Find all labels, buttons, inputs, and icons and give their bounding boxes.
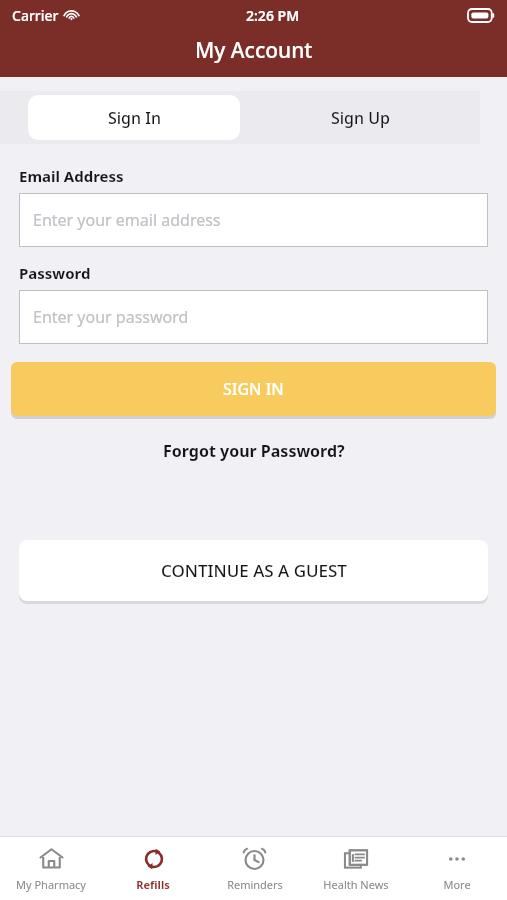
staticText: Forgot your Password?: [163, 440, 345, 462]
staticText: Email Address: [19, 166, 124, 186]
staticText: 2:26 PM: [246, 6, 300, 25]
staticText: My Pharmacy: [16, 877, 86, 892]
button[interactable]: Sign In: [28, 95, 240, 140]
staticText: Password: [19, 263, 91, 283]
button[interactable]: Health News: [305, 837, 406, 900]
staticText: More: [443, 877, 471, 892]
button[interactable]: CONTINUE AS A GUEST: [19, 540, 488, 601]
staticText: Health News: [323, 877, 389, 892]
staticText: Refills: [136, 877, 170, 892]
staticText: Sign In: [108, 107, 161, 129]
staticText: CONTINUE AS A GUEST: [161, 559, 347, 582]
button[interactable]: More: [406, 837, 507, 900]
button[interactable]: My Pharmacy: [0, 837, 102, 900]
button[interactable]: Enter your email address: [19, 193, 488, 247]
staticText: SIGN IN: [223, 378, 284, 400]
staticText: Enter your password: [33, 306, 189, 328]
staticText: My Account: [195, 36, 313, 65]
button[interactable]: Reminders: [204, 837, 305, 900]
staticText: Sign Up: [331, 107, 390, 129]
button[interactable]: Forgot your Password?: [153, 436, 355, 466]
button[interactable]: SIGN IN: [11, 362, 496, 416]
staticText: Enter your email address: [33, 209, 221, 231]
button[interactable]: Enter your password: [19, 290, 488, 344]
button[interactable]: Sign Up: [240, 91, 480, 144]
button[interactable]: Refills: [102, 837, 204, 900]
staticText: Carrier: [12, 6, 59, 25]
staticText: Reminders: [227, 877, 283, 892]
